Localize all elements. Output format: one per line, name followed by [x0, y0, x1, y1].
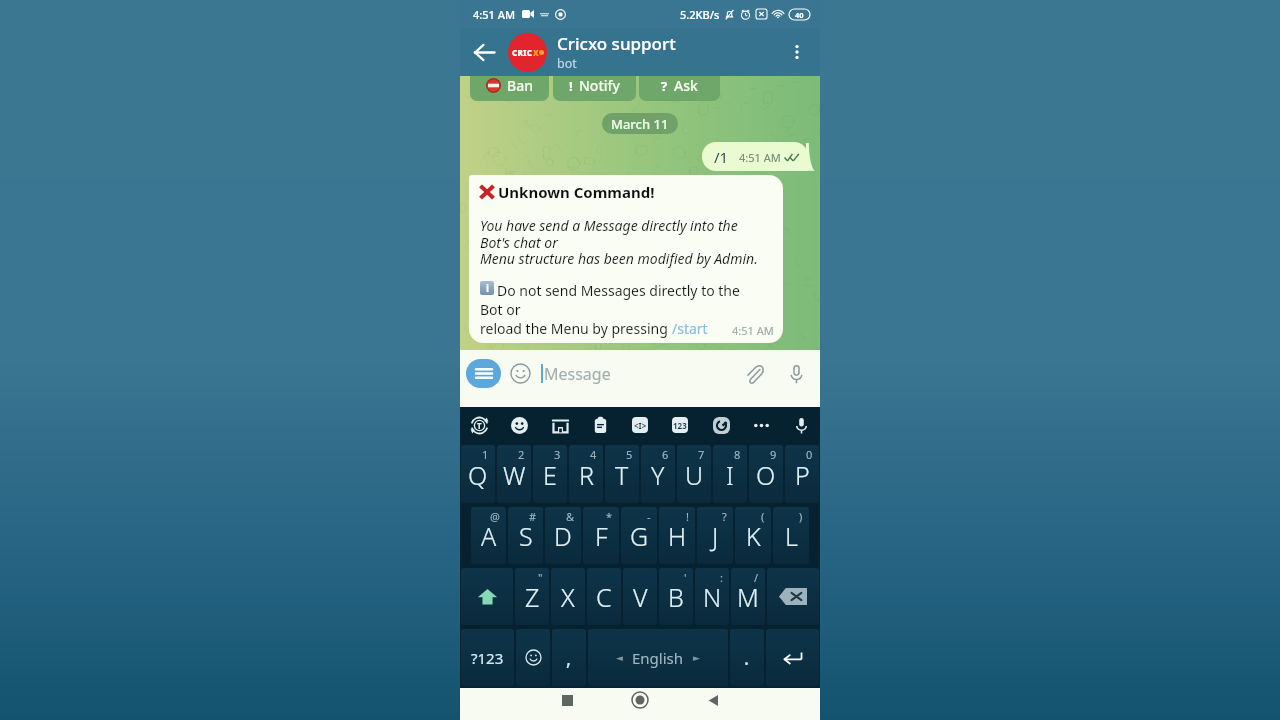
button[interactable]: Clipboard	[587, 412, 613, 438]
button[interactable]: K	[735, 507, 771, 564]
staticText: March 11	[611, 115, 669, 133]
button[interactable]: Emoji	[516, 629, 550, 686]
staticText: (	[761, 509, 765, 524]
button[interactable]: Back	[460, 28, 508, 76]
button[interactable]: !	[553, 76, 636, 101]
staticText: 9	[770, 447, 777, 462]
staticText: Message	[544, 363, 611, 385]
button[interactable]: M	[731, 568, 765, 625]
button[interactable]: Voice input	[788, 412, 814, 438]
staticText: L	[785, 519, 798, 553]
button[interactable]: Symbols	[461, 629, 514, 686]
button[interactable]: Attach	[741, 360, 769, 388]
button[interactable]: P	[785, 445, 819, 503]
staticText: I	[726, 458, 734, 492]
button[interactable]: L	[773, 507, 809, 564]
staticText: E	[543, 458, 557, 492]
button[interactable]: Numbers	[667, 412, 693, 438]
button[interactable]: S	[508, 507, 543, 564]
staticText: ?	[661, 77, 668, 95]
staticText: H	[668, 519, 687, 553]
button[interactable]: R	[569, 445, 603, 503]
staticText: reload the Menu by pressing	[480, 319, 672, 338]
button[interactable]: H	[659, 507, 695, 564]
staticText: i	[486, 281, 489, 295]
button[interactable]: O	[749, 445, 783, 503]
button[interactable]: ?	[639, 76, 720, 101]
button[interactable]: Bot menu	[466, 359, 501, 388]
staticText: #	[529, 509, 537, 524]
button[interactable]: Store	[547, 412, 573, 438]
button[interactable]: J	[697, 507, 733, 564]
staticText: /start	[672, 319, 708, 338]
button[interactable]: D	[545, 507, 581, 564]
staticText: 4:51 AM	[473, 7, 516, 22]
button[interactable]: A	[471, 507, 506, 564]
staticText: J	[712, 519, 719, 553]
staticText: K	[746, 519, 761, 553]
button[interactable]: Translate	[466, 412, 492, 438]
staticText: *	[606, 509, 613, 524]
button[interactable]: F	[583, 507, 619, 564]
button[interactable]: Back	[693, 688, 733, 712]
button[interactable]: Home	[620, 688, 660, 712]
button[interactable]: Backspace	[767, 568, 819, 625]
staticText: V	[633, 580, 648, 614]
button[interactable]: Ban	[470, 76, 549, 101]
button[interactable]: Space	[588, 629, 728, 686]
staticText: You have send a Message directly into th…	[480, 216, 758, 268]
button[interactable]: Assistant	[708, 412, 734, 438]
staticText: @	[490, 509, 500, 524]
button[interactable]: W	[497, 445, 531, 503]
staticText: 5.2KB/s	[680, 7, 720, 22]
staticText: 40	[795, 10, 804, 20]
staticText: Q	[468, 458, 488, 492]
staticText: ,	[566, 645, 572, 671]
staticText: Do not send Messages directly to the	[497, 281, 740, 300]
button[interactable]: B	[659, 568, 693, 625]
button[interactable]: Period	[730, 629, 764, 686]
staticText: Ask	[674, 76, 698, 95]
staticText: ?123	[471, 648, 504, 668]
staticText: W	[503, 458, 526, 492]
button[interactable]: T	[605, 445, 639, 503]
button[interactable]: V	[623, 568, 657, 625]
button[interactable]: Message	[544, 350, 741, 397]
button[interactable]: More options	[774, 29, 820, 75]
staticText: X	[533, 47, 539, 58]
staticText: .	[744, 645, 750, 671]
button[interactable]: G	[621, 507, 657, 564]
staticText: 3	[554, 447, 561, 462]
staticText: Ban	[507, 76, 533, 95]
staticText: "	[538, 570, 543, 585]
button[interactable]: U	[677, 445, 711, 503]
button[interactable]: N	[695, 568, 729, 625]
staticText: 6	[662, 447, 669, 462]
button[interactable]: Z	[515, 568, 549, 625]
button[interactable]: Stickers	[506, 412, 532, 438]
staticText: N	[703, 580, 722, 614]
button[interactable]: I	[713, 445, 747, 503]
staticText: !	[686, 509, 689, 524]
button[interactable]: Voice message	[782, 360, 810, 388]
button[interactable]: Comma	[552, 629, 586, 686]
button[interactable]: C	[587, 568, 621, 625]
button[interactable]: Y	[641, 445, 675, 503]
staticText: 2	[518, 447, 525, 462]
button[interactable]: E	[533, 445, 567, 503]
staticText: -	[647, 509, 651, 524]
button[interactable]: Enter	[766, 629, 819, 686]
staticText: ►	[693, 653, 700, 663]
button[interactable]: Recents	[547, 688, 587, 712]
staticText: 4	[590, 447, 597, 462]
button[interactable]: Emoji	[509, 362, 532, 385]
staticText: Cricxo support	[557, 32, 676, 55]
staticText: &	[566, 509, 575, 524]
staticText: X	[561, 580, 575, 614]
button[interactable]: More	[748, 412, 774, 438]
staticText: 4:51 AM	[732, 323, 774, 338]
button[interactable]: Q	[461, 445, 495, 503]
button[interactable]: Text edit	[627, 412, 653, 438]
button[interactable]: X	[551, 568, 585, 625]
button[interactable]: Shift	[461, 568, 513, 625]
